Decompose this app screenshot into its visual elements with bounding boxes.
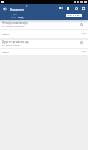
button[interactable]: Sync — [73, 5, 79, 11]
button[interactable]: Колич — [0, 49, 88, 55]
button[interactable]: Back — [1, 5, 9, 13]
button[interactable]: Колич — [0, 30, 88, 38]
staticText: Комитен — [10, 7, 24, 11]
staticText: ул. Друга улица — [2, 43, 20, 46]
button[interactable]: Note — [65, 5, 71, 11]
staticText: Колич — [2, 32, 10, 35]
staticText: Друго трговско др — [2, 40, 29, 44]
button[interactable]: Sync — [80, 23, 83, 26]
staticText: Колич — [2, 50, 10, 53]
button[interactable]: Некоја компанија — [0, 20, 88, 28]
staticText: НОВА СТАВКА — [67, 14, 81, 17]
staticText: Купу — [11, 16, 17, 19]
staticText: ул. Некоја улица бр — [2, 24, 25, 27]
button[interactable]: Video — [58, 5, 64, 11]
staticText: МКД — [18, 16, 24, 19]
staticText: * — [26, 5, 28, 9]
staticText: 12,00 — [81, 32, 87, 35]
button[interactable]: Друго трговско др — [0, 40, 88, 48]
staticText: Некоја компанија — [2, 21, 28, 25]
staticText: 3,00 — [82, 50, 87, 53]
button[interactable]: НОВА СТАВКА — [66, 14, 82, 17]
staticText: дет — [13, 13, 17, 16]
button[interactable]: Sync — [80, 41, 83, 44]
button[interactable]: More options — [80, 5, 86, 11]
